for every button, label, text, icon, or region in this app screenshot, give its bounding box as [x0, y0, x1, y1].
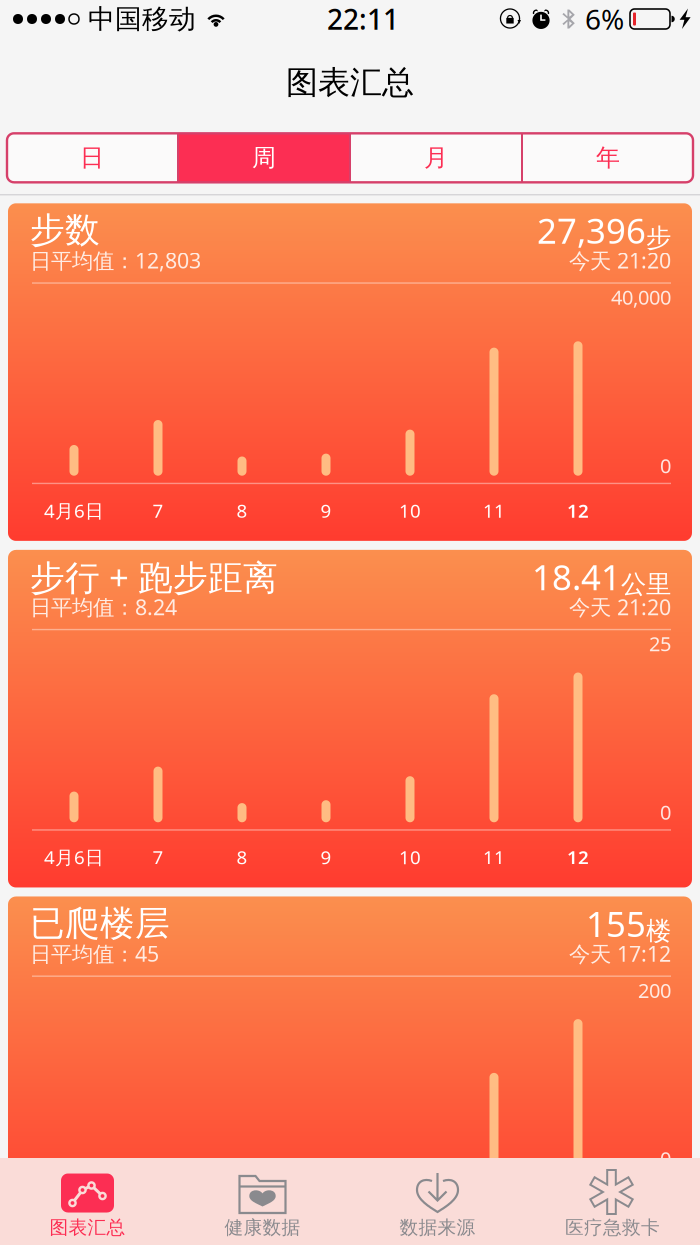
staticText: 步 — [646, 222, 671, 253]
staticText: 中国移动 — [88, 3, 196, 35]
staticText: 日 — [80, 143, 104, 173]
staticText: 11 — [483, 845, 505, 869]
staticText: 日平均值：45 — [30, 939, 159, 968]
staticText: 楼 — [646, 915, 671, 946]
staticText: 40,000 — [611, 284, 671, 310]
staticText: 0 — [660, 799, 671, 825]
staticText: 图表汇总 — [286, 63, 414, 102]
staticText: 图表汇总 — [49, 1216, 125, 1239]
staticText: 步行 + 跑步距离 — [30, 554, 278, 600]
staticText: 年 — [596, 143, 620, 173]
button[interactable]: 医疗急救卡 — [525, 1158, 700, 1245]
staticText: 27,396 — [537, 207, 646, 253]
staticText: 数据来源 — [399, 1216, 475, 1239]
staticText: 今天 21:20 — [569, 246, 671, 274]
staticText: 9 — [320, 498, 331, 523]
button[interactable]: 数据来源 — [350, 1158, 525, 1245]
staticText: 10 — [399, 845, 421, 869]
staticText: 155 — [586, 900, 646, 946]
staticText: 8 — [236, 498, 247, 523]
button[interactable]: 年 — [523, 133, 693, 182]
staticText: 25 — [649, 630, 671, 657]
staticText: 今天 17:12 — [569, 939, 671, 968]
staticText: 7 — [152, 845, 163, 869]
button[interactable]: 月 — [351, 133, 521, 182]
staticText: 10 — [399, 1191, 421, 1216]
staticText: 月 — [424, 143, 448, 173]
staticText: 6% — [585, 0, 624, 38]
staticText: 步数 — [30, 209, 100, 252]
staticText: 7 — [152, 498, 163, 523]
staticText: 日平均值：12,803 — [30, 246, 201, 274]
staticText: 12 — [567, 498, 589, 523]
staticText: 健康数据 — [224, 1216, 300, 1239]
staticText: 11 — [483, 498, 505, 523]
staticText: 8 — [236, 1191, 247, 1216]
staticText: 公里 — [621, 569, 671, 600]
staticText: 4月6日 — [44, 845, 104, 869]
button[interactable]: 周 — [179, 133, 349, 182]
staticText: 周 — [252, 143, 276, 173]
staticText: 22:11 — [327, 0, 399, 38]
staticText: 0 — [660, 1145, 671, 1172]
staticText: 今天 21:20 — [569, 593, 671, 621]
staticText: 已爬楼层 — [30, 902, 170, 945]
button[interactable]: 图表汇总 — [0, 1158, 175, 1245]
staticText: 医疗急救卡 — [565, 1216, 660, 1239]
staticText: 日平均值：8.24 — [30, 593, 177, 621]
staticText: 10 — [399, 498, 421, 523]
button[interactable]: 日 — [7, 133, 177, 182]
staticText: 9 — [320, 845, 331, 869]
staticText: 4月6日 — [44, 1191, 104, 1216]
staticText: 12 — [567, 845, 589, 869]
button[interactable]: 健康数据 — [175, 1158, 350, 1245]
staticText: 200 — [638, 977, 671, 1003]
staticText: 8 — [236, 845, 247, 869]
staticText: 4月6日 — [44, 498, 104, 523]
staticText: 18.41 — [532, 554, 621, 600]
staticText: 0 — [660, 452, 671, 479]
